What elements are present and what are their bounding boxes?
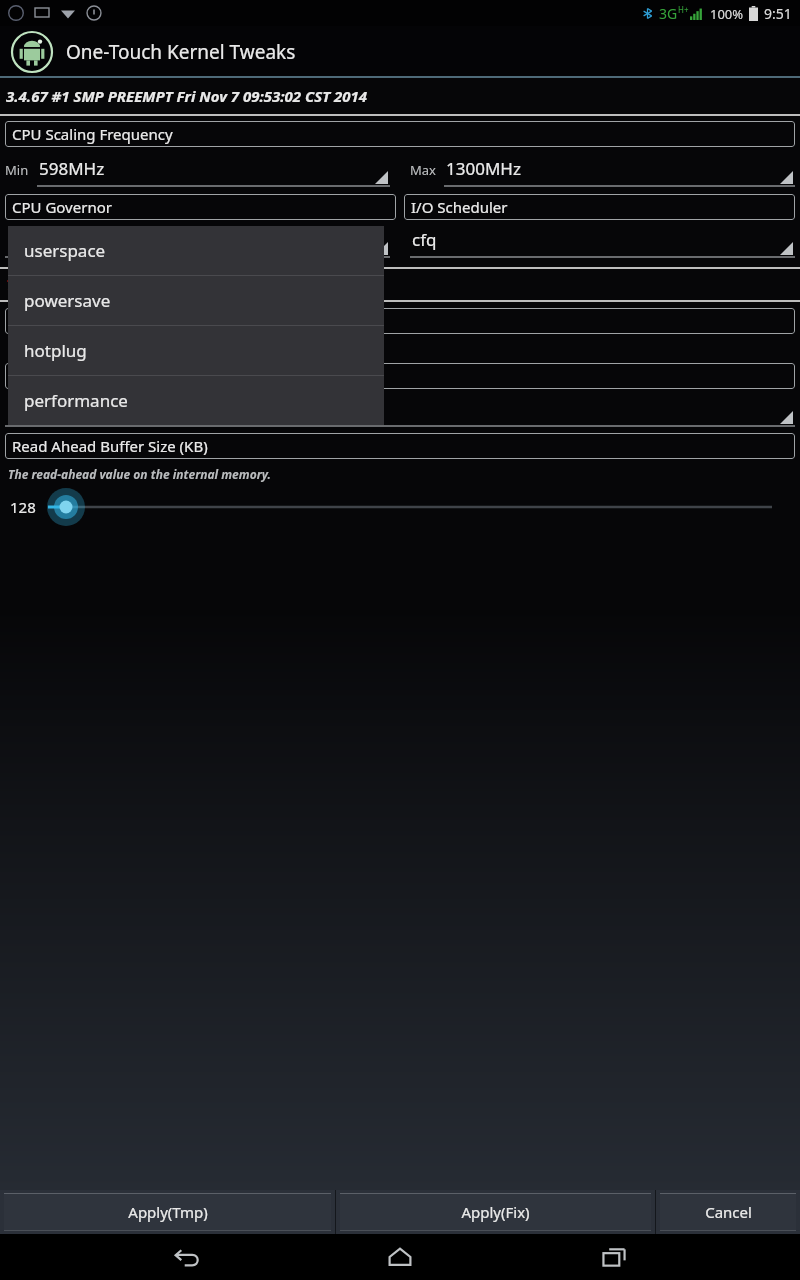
button[interactable]: CPU Governor	[5, 194, 396, 220]
button[interactable]: Back	[158, 1234, 214, 1280]
staticText: The tendency of the kernel to use swap s…	[8, 341, 269, 357]
staticText: CPU Governor	[12, 197, 112, 217]
staticText: H+	[678, 4, 689, 15]
staticText: cfq	[412, 228, 437, 251]
staticText: 3G	[659, 4, 678, 23]
staticText: Max	[410, 161, 436, 179]
button[interactable]: cfq	[410, 224, 795, 258]
staticText: Apply(Fix)	[461, 1202, 530, 1222]
staticText: 100%	[710, 5, 744, 23]
staticText: 1300MHz	[446, 157, 521, 180]
button[interactable]: Cancel	[660, 1193, 796, 1231]
button[interactable]: Max	[410, 153, 795, 187]
button[interactable]: hotplug	[5, 224, 390, 258]
button[interactable]: Entropy	[5, 363, 795, 389]
staticText: hotplug	[24, 339, 87, 362]
staticText: userspace	[24, 239, 106, 262]
button[interactable]: Apply(Fix)	[340, 1193, 651, 1231]
staticText: I/O Scheduler	[411, 197, 508, 217]
button[interactable]: performance	[8, 376, 384, 425]
button[interactable]: Swappiness	[5, 308, 795, 334]
staticText: 598MHz	[39, 157, 105, 180]
button[interactable]: powersave	[8, 276, 384, 325]
staticText: CPU Scaling Frequency	[12, 124, 173, 144]
button[interactable]: Recent apps	[586, 1234, 642, 1280]
staticText: Apply(Tmp)	[128, 1202, 208, 1222]
staticText: The read-ahead value on the internal mem…	[8, 466, 271, 482]
staticText: Swappiness	[12, 311, 95, 331]
button[interactable]: hotplug	[8, 326, 384, 375]
button[interactable]: 128	[0, 488, 800, 526]
button[interactable]: userspace	[8, 226, 384, 275]
staticText: 128	[10, 497, 36, 517]
staticText: 9:51	[764, 4, 792, 23]
staticText: This feature is not supported by the cur…	[6, 275, 344, 294]
staticText: One-Touch Kernel Tweaks	[66, 39, 296, 65]
staticText: Cancel	[705, 1202, 752, 1222]
button[interactable]: Home	[372, 1234, 428, 1280]
staticText: 3.4.67 #1 SMP PREEMPT Fri Nov 7 09:53:02…	[6, 86, 368, 106]
staticText: hotplug	[7, 228, 70, 251]
button[interactable]: Min	[5, 153, 390, 187]
button[interactable]: Apply(Tmp)	[4, 1193, 331, 1231]
staticText: Read Ahead Buffer Size (KB)	[12, 436, 208, 456]
staticText: performance	[24, 389, 128, 412]
button[interactable]	[5, 393, 795, 427]
staticText: powersave	[24, 289, 111, 312]
button[interactable]: I/O Scheduler	[404, 194, 795, 220]
staticText: Entropy	[12, 366, 67, 386]
staticText: Min	[5, 161, 29, 179]
button[interactable]: Read Ahead Buffer Size (KB)	[5, 433, 795, 459]
button[interactable]: CPU Scaling Frequency	[5, 121, 795, 147]
